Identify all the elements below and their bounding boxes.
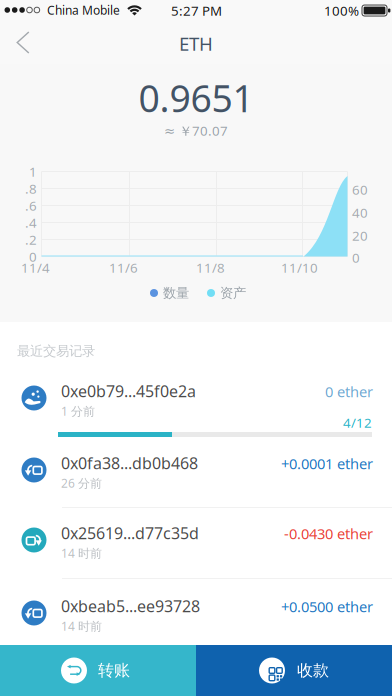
button[interactable]: 转账 [0,645,196,696]
staticText: 1 分前 [61,403,95,419]
staticText: +0.0001 ether [281,454,373,473]
button[interactable]: 0x25619...d77c35d [0,508,392,579]
staticText: China Mobile [47,2,120,18]
staticText: 14 时前 [61,545,102,561]
staticText: 60 [352,181,368,198]
staticText: 100% [324,2,359,19]
staticText: ETH [179,31,213,56]
staticText: 0 ether [325,382,373,401]
staticText: 转账 [98,660,130,680]
staticText: 0 [352,249,360,266]
staticText: 4/12 [343,414,372,431]
button[interactable]: 0xe0b79...45f0e2a [0,370,392,436]
staticText: .4 [25,214,37,231]
staticText: +0.0500 ether [281,597,373,616]
staticText: 11/10 [281,259,318,276]
staticText: 14 时前 [61,618,102,634]
staticText: 20 [352,227,368,244]
staticText: -0.0430 ether [284,524,373,543]
staticText: 11/8 [196,259,225,276]
button[interactable]: 收款 [196,645,392,696]
staticText: 5:27 PM [171,2,222,19]
staticText: 11/6 [109,259,138,276]
staticText: 0xe0b79...45f0e2a [61,380,196,402]
staticText: 收款 [297,660,329,680]
staticText: .8 [25,180,37,197]
staticText: ≈ ￥70.07 [164,122,228,139]
staticText: 0x0fa38...db0b468 [61,452,198,474]
staticText: 26 分前 [61,475,102,491]
staticText: 0xbeab5...ee93728 [61,595,200,617]
button[interactable]: Back [0,20,48,64]
staticText: 资产 [220,285,246,301]
staticText: .6 [25,197,37,214]
staticText: 最近交易记录 [17,343,95,359]
staticText: 1 [29,163,37,180]
staticText: .2 [25,231,37,248]
button[interactable]: 0x0fa38...db0b468 [0,437,392,508]
staticText: 0x25619...d77c35d [61,522,199,544]
staticText: 11/4 [21,259,50,276]
staticText: 0.9651 [138,73,253,123]
staticText: 40 [352,204,368,221]
staticText: 数量 [163,285,189,301]
staticText: 0 [29,248,37,265]
button[interactable]: 0xbeab5...ee93728 [0,579,392,645]
